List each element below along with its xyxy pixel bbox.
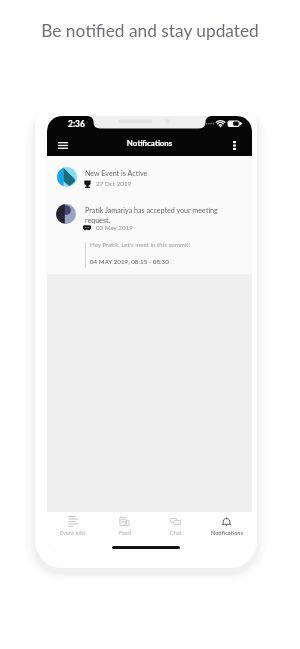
staticText: Be notified and stay updated xyxy=(0,20,300,41)
button[interactable]: More options xyxy=(224,135,245,156)
button[interactable]: Feed xyxy=(99,512,150,553)
staticText: 04 MAY 2019, 08:15 - 08:30 xyxy=(90,258,169,265)
staticText: Notifications xyxy=(211,529,243,536)
button[interactable]: Chat xyxy=(150,512,201,553)
button[interactable]: Notifications xyxy=(201,512,252,553)
staticText: Hey Pratik, Let's meet in this summit! xyxy=(90,241,191,248)
button[interactable] xyxy=(47,156,252,201)
staticText: 03 May 2019 xyxy=(96,224,133,231)
staticText: 27 Oct 2019 xyxy=(96,180,132,187)
staticText: Notifications xyxy=(47,138,252,147)
button[interactable]: Menu xyxy=(52,135,73,156)
staticText: Feed xyxy=(119,529,131,536)
staticText: Pratik Jamariya has accepted your meetin… xyxy=(85,206,231,224)
staticText: Event Info xyxy=(60,529,86,536)
staticText: Chat xyxy=(170,529,182,536)
staticText: New Event is Active xyxy=(85,169,148,178)
button[interactable] xyxy=(47,201,252,273)
button[interactable]: Event Info xyxy=(47,512,99,553)
staticText: 2:36 xyxy=(68,119,85,129)
